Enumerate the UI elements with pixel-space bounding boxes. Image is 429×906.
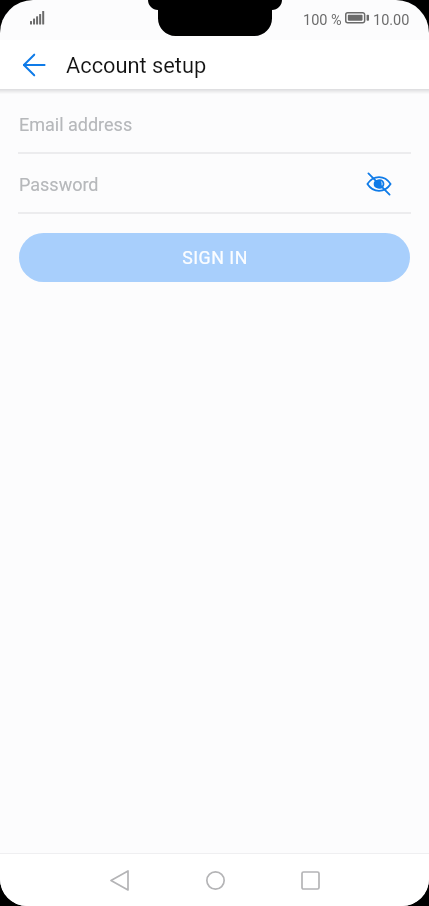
staticText: 10.00: [373, 12, 410, 29]
staticText: SIGN IN: [182, 247, 248, 268]
staticText: Account setup: [66, 53, 207, 79]
staticText: Password: [19, 174, 99, 195]
button[interactable]: SIGN IN: [19, 233, 410, 282]
button[interactable]: Recent apps: [286, 856, 334, 904]
staticText: Email address: [19, 114, 133, 135]
button[interactable]: Navigate up: [12, 43, 56, 87]
button[interactable]: Show password: [364, 170, 394, 198]
button[interactable]: Home: [191, 856, 239, 904]
button[interactable]: Back: [95, 856, 143, 904]
staticText: 100 %: [303, 12, 342, 29]
